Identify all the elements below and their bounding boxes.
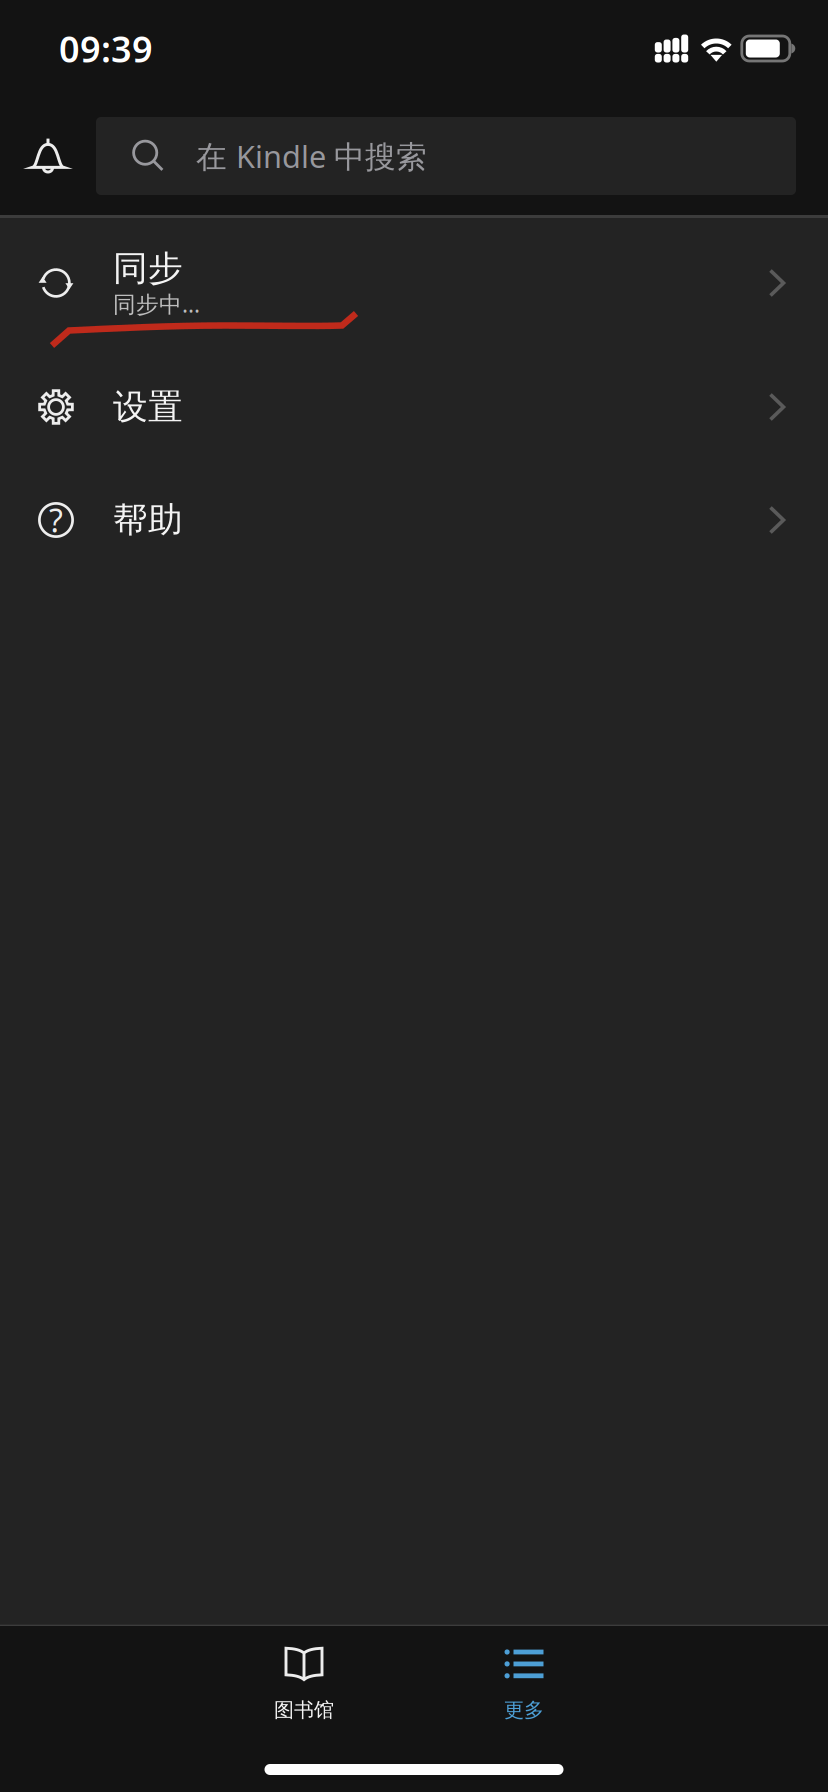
button[interactable]: 同步 [0, 217, 828, 348]
staticText: 09:39 [59, 25, 153, 72]
button[interactable]: 通知 [0, 117, 96, 195]
staticText: 在 Kindle 中搜索 [196, 135, 427, 177]
button[interactable]: 图书馆 [194, 1626, 414, 1727]
staticText: 设置 [113, 385, 183, 429]
staticText: 同步 [113, 247, 183, 290]
staticText: 同步中... [113, 288, 200, 319]
staticText: 图书馆 [274, 1697, 334, 1723]
button[interactable]: ? [0, 465, 828, 575]
button[interactable]: 设置 [0, 349, 828, 465]
staticText: 更多 [504, 1697, 544, 1723]
button[interactable]: 在 Kindle 中搜索 [96, 117, 796, 195]
staticText: ? [49, 499, 63, 541]
button[interactable]: 更多 [414, 1626, 634, 1727]
staticText: 帮助 [113, 498, 183, 542]
